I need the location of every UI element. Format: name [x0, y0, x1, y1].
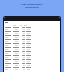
staticText: High measurement repeatability: [3, 3, 61, 9]
